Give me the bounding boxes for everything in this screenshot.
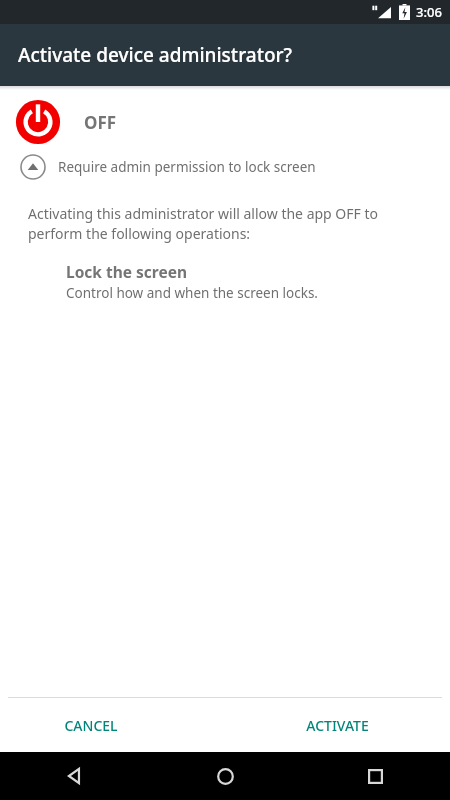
staticText: Activate device administrator? xyxy=(18,42,293,68)
staticText: CANCEL xyxy=(64,716,118,735)
staticText: Activating this administrator will allow… xyxy=(28,204,422,243)
staticText: 3:06 xyxy=(416,3,442,21)
staticText: OFF xyxy=(84,111,117,134)
button[interactable]: Back xyxy=(0,752,150,800)
staticText: Require admin permission to lock screen xyxy=(58,158,316,176)
button[interactable]: CANCEL xyxy=(0,698,225,752)
other: Collapse details xyxy=(20,154,46,180)
staticText: ACTIVATE xyxy=(306,716,369,735)
staticText: Lock the screen xyxy=(66,261,188,282)
button[interactable]: Recent apps xyxy=(300,752,450,800)
staticText: Control how and when the screen locks. xyxy=(66,284,318,302)
button[interactable]: Collapse details xyxy=(0,150,450,184)
button[interactable]: ACTIVATE xyxy=(225,698,450,752)
button[interactable]: Home xyxy=(150,752,300,800)
